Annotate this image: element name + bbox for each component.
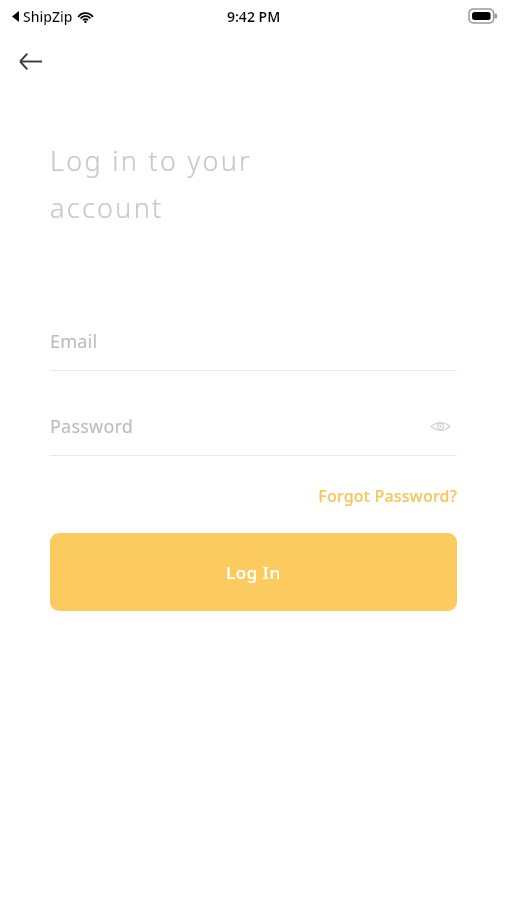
button[interactable]: Email	[50, 324, 457, 371]
button[interactable]: Forgot Password?	[318, 481, 457, 511]
staticText: 9:42 PM	[227, 7, 281, 26]
staticText: ShipZip	[23, 7, 73, 26]
staticText: Log In	[226, 561, 281, 584]
button[interactable]: Password	[50, 409, 457, 456]
staticText: Email	[50, 329, 98, 354]
button[interactable]: Log In	[50, 533, 457, 611]
staticText: account	[50, 189, 164, 226]
button[interactable]: Show password	[423, 409, 457, 443]
staticText: Log in to your	[50, 142, 253, 179]
staticText: Forgot Password?	[318, 485, 457, 507]
button[interactable]: Back	[8, 39, 52, 83]
staticText: Password	[50, 414, 134, 439]
